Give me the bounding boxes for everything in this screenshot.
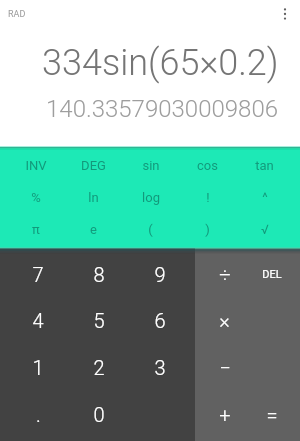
button[interactable]: π (7, 213, 65, 245)
staticText: log (142, 190, 160, 205)
staticText: 6 (154, 309, 166, 332)
button[interactable]: − (201, 344, 248, 391)
button[interactable]: 0 (68, 391, 129, 438)
staticText: − (219, 356, 231, 379)
button[interactable]: 8 (68, 251, 129, 297)
button[interactable]: RAD (6, 7, 28, 22)
staticText: cos (197, 158, 218, 173)
button[interactable]: 5 (68, 297, 129, 344)
staticText: ^ (262, 190, 268, 205)
staticText: RAD (8, 9, 26, 20)
staticText: e (90, 222, 97, 237)
button[interactable]: 4 (8, 297, 68, 344)
staticText: 140.33579030009806 (46, 95, 279, 123)
button[interactable]: 6 (129, 297, 190, 344)
button[interactable]: ln (65, 181, 122, 213)
button[interactable]: sin (122, 149, 179, 181)
button[interactable]: ( (122, 213, 179, 245)
staticText: + (219, 403, 231, 426)
staticText: ) (205, 222, 210, 237)
staticText: ln (88, 190, 99, 205)
staticText: 9 (154, 263, 166, 286)
staticText: 4 (32, 309, 44, 332)
button[interactable]: DEG (65, 149, 122, 181)
button[interactable]: log (122, 181, 179, 213)
button[interactable]: 9 (129, 251, 190, 297)
button[interactable]: × (201, 297, 248, 344)
staticText: INV (25, 158, 47, 173)
button[interactable]: 7 (8, 251, 68, 297)
staticText: DEG (81, 158, 106, 173)
staticText: sin (142, 158, 160, 173)
button[interactable]: ) (179, 213, 236, 245)
staticText: × (219, 309, 230, 332)
button[interactable]: . (8, 391, 68, 438)
button[interactable]: INV (7, 149, 65, 181)
button[interactable]: + (201, 391, 248, 438)
staticText: 334sin(65×0.2) (42, 42, 279, 84)
button[interactable]: 2 (68, 344, 129, 391)
staticText: 3 (154, 356, 166, 379)
button[interactable]: DEL (248, 251, 296, 297)
staticText: DEL (262, 268, 282, 281)
staticText: tan (255, 158, 274, 173)
staticText: % (31, 190, 41, 205)
staticText: 8 (93, 263, 105, 286)
button[interactable]: √ (236, 213, 293, 245)
staticText: 0 (93, 403, 105, 426)
button[interactable]: ^ (236, 181, 293, 213)
button[interactable]: 1 (8, 344, 68, 391)
staticText: ( (148, 222, 153, 237)
button[interactable]: ÷ (201, 251, 248, 297)
staticText: . (36, 403, 41, 426)
staticText: ! (206, 190, 210, 205)
staticText: = (266, 403, 278, 426)
staticText: 2 (93, 356, 105, 379)
staticText: π (32, 222, 40, 237)
button[interactable]: More options (273, 2, 297, 26)
staticText: √ (261, 222, 269, 237)
button[interactable]: 3 (129, 344, 190, 391)
button[interactable]: tan (236, 149, 293, 181)
button[interactable]: = (248, 391, 296, 438)
staticText: 1 (32, 356, 44, 379)
staticText: 5 (93, 309, 105, 332)
button[interactable]: cos (179, 149, 236, 181)
staticText: ÷ (219, 263, 231, 286)
button[interactable]: ! (179, 181, 236, 213)
button[interactable]: e (65, 213, 122, 245)
button[interactable]: % (7, 181, 65, 213)
staticText: 7 (32, 263, 44, 286)
